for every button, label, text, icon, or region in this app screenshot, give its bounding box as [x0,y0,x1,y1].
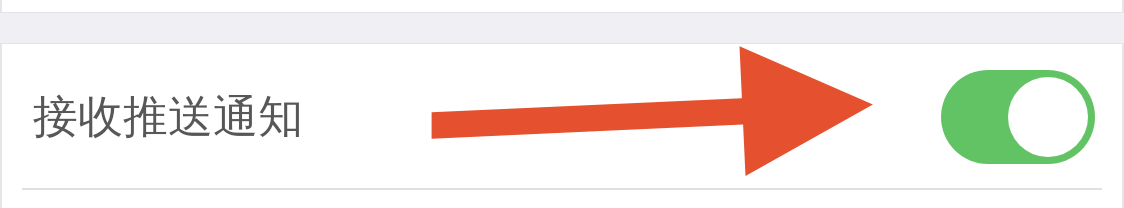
staticText: 接收推送通知 [33,89,303,146]
button[interactable]: 接收推送通知 [0,44,1124,188]
button[interactable]: Toggle push notifications [941,70,1095,164]
